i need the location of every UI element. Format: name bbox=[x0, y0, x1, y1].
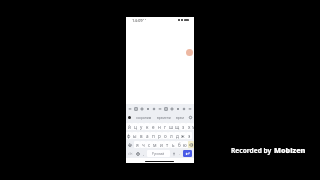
button[interactable]: л bbox=[168, 132, 174, 139]
button[interactable]: и bbox=[158, 141, 164, 148]
button[interactable]: а bbox=[144, 132, 150, 139]
button[interactable]: ч bbox=[140, 141, 146, 148]
staticText: 14:09 bbox=[132, 18, 143, 24]
staticText: врем bbox=[176, 116, 184, 120]
button[interactable]: Tool 4 bbox=[152, 107, 156, 111]
staticText: Русский bbox=[152, 152, 165, 156]
button[interactable]: е bbox=[150, 123, 156, 130]
staticText: ы bbox=[133, 133, 137, 139]
button[interactable]: в bbox=[138, 132, 144, 139]
button[interactable]: Tool 5 bbox=[158, 107, 162, 111]
staticText: ю bbox=[183, 142, 187, 148]
staticText: Mobizen bbox=[274, 145, 306, 155]
button[interactable]: о bbox=[162, 132, 168, 139]
staticText: т bbox=[166, 142, 169, 148]
button[interactable]: я bbox=[134, 141, 140, 148]
button[interactable]: х bbox=[186, 123, 192, 130]
staticText: ж bbox=[181, 133, 185, 139]
staticText: э bbox=[188, 133, 191, 139]
button[interactable]: у bbox=[138, 123, 144, 130]
staticText: к bbox=[146, 124, 149, 130]
button[interactable]: б bbox=[176, 141, 182, 148]
button[interactable]: ю bbox=[182, 141, 188, 148]
button[interactable]: с bbox=[146, 141, 152, 148]
staticText: ц bbox=[134, 124, 137, 130]
staticText: , bbox=[143, 151, 145, 156]
button[interactable]: Voice input bbox=[170, 149, 177, 158]
staticText: времени bbox=[157, 116, 171, 120]
staticText: ь bbox=[172, 142, 175, 148]
staticText: и bbox=[160, 142, 163, 148]
staticText: х bbox=[188, 124, 191, 130]
button[interactable]: ъ bbox=[192, 123, 194, 130]
staticText: д bbox=[176, 133, 179, 139]
button[interactable]: =\< bbox=[126, 150, 134, 157]
button[interactable]: м bbox=[152, 141, 158, 148]
button[interactable]: ф bbox=[126, 132, 132, 139]
button[interactable]: й bbox=[126, 123, 132, 130]
button[interactable]: Backspace bbox=[188, 141, 194, 148]
button[interactable]: т bbox=[164, 141, 170, 148]
staticText: ф bbox=[127, 133, 131, 139]
staticText: с bbox=[148, 142, 151, 148]
button[interactable]: Tool 10 bbox=[188, 107, 192, 111]
button[interactable]: Tool 1 bbox=[134, 107, 138, 111]
button[interactable]: Shift bbox=[126, 141, 134, 148]
staticText: ш bbox=[169, 124, 174, 130]
staticText: б bbox=[178, 142, 181, 148]
button[interactable]: щ bbox=[174, 123, 180, 130]
button[interactable]: ц bbox=[132, 123, 138, 130]
button[interactable]: з bbox=[180, 123, 186, 130]
staticText: =\< bbox=[128, 152, 133, 156]
staticText: р bbox=[158, 133, 161, 139]
button[interactable]: р bbox=[156, 132, 162, 139]
staticText: ъ bbox=[192, 124, 194, 130]
button[interactable]: г bbox=[162, 123, 168, 130]
button[interactable]: Tool 2 bbox=[140, 107, 144, 111]
staticText: ч bbox=[142, 142, 145, 148]
button[interactable]: Tool 9 bbox=[182, 107, 186, 111]
button[interactable]: э bbox=[186, 132, 192, 139]
button[interactable]: Tool 0 bbox=[128, 107, 132, 111]
button[interactable]: , bbox=[141, 150, 147, 157]
staticText: щ bbox=[175, 124, 180, 130]
button[interactable]: Tool 6 bbox=[164, 107, 168, 111]
staticText: сохраним bbox=[136, 116, 152, 120]
button[interactable]: ы bbox=[132, 132, 138, 139]
staticText: м bbox=[153, 142, 157, 148]
button[interactable]: . bbox=[177, 150, 183, 157]
staticText: . bbox=[179, 151, 181, 156]
staticText: в bbox=[140, 133, 143, 139]
staticText: п bbox=[152, 133, 155, 139]
button[interactable]: н bbox=[156, 123, 162, 130]
button[interactable]: п bbox=[150, 132, 156, 139]
staticText: а bbox=[146, 133, 149, 139]
staticText: з bbox=[182, 124, 185, 130]
button[interactable]: ь bbox=[170, 141, 176, 148]
staticText: Recorded by bbox=[231, 146, 272, 155]
staticText: о bbox=[164, 133, 167, 139]
button[interactable]: Tool 3 bbox=[146, 107, 150, 111]
button[interactable]: ж bbox=[180, 132, 186, 139]
staticText: л bbox=[170, 133, 173, 139]
button[interactable]: Tool 7 bbox=[170, 107, 174, 111]
button[interactable]: Send bbox=[183, 150, 192, 157]
button[interactable]: ш bbox=[168, 123, 174, 130]
staticText: я bbox=[136, 142, 139, 148]
button[interactable]: Tool 8 bbox=[176, 107, 180, 111]
button[interactable]: д bbox=[174, 132, 180, 139]
staticText: й bbox=[128, 124, 131, 130]
staticText: г bbox=[164, 124, 167, 130]
button[interactable]: Русский bbox=[147, 150, 170, 157]
button[interactable]: к bbox=[144, 123, 150, 130]
staticText: е bbox=[152, 124, 155, 130]
staticText: у bbox=[140, 124, 143, 130]
button[interactable]: Emoji bbox=[134, 149, 141, 158]
staticText: н bbox=[158, 124, 161, 130]
